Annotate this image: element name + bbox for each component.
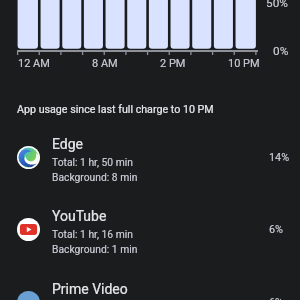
staticText: 14% <box>269 151 290 164</box>
staticText: YouTube <box>52 208 107 224</box>
staticText: Background: 8 min <box>52 171 138 183</box>
staticText: 6% <box>269 223 283 236</box>
staticText: Background: 1 min <box>52 243 138 255</box>
staticText: 0% <box>273 44 289 58</box>
button[interactable]: Prime Video <box>0 277 300 300</box>
staticText: 12 AM <box>18 57 50 70</box>
staticText: 2 PM <box>160 57 186 70</box>
staticText: Prime Video <box>52 281 128 297</box>
staticText: Total: 1 hr, 50 min <box>52 156 133 168</box>
staticText: 8 AM <box>92 57 118 70</box>
staticText: 10 PM <box>228 57 260 70</box>
button[interactable]: Edge <box>0 132 300 192</box>
staticText: 50% <box>266 0 288 10</box>
staticText: Edge <box>52 136 84 152</box>
staticText: Total: 1 hr, 16 min <box>52 228 133 240</box>
button[interactable]: YouTube <box>0 204 300 264</box>
staticText: 6% <box>269 296 283 300</box>
staticText: App usage since last full charge to 10 P… <box>17 103 214 116</box>
